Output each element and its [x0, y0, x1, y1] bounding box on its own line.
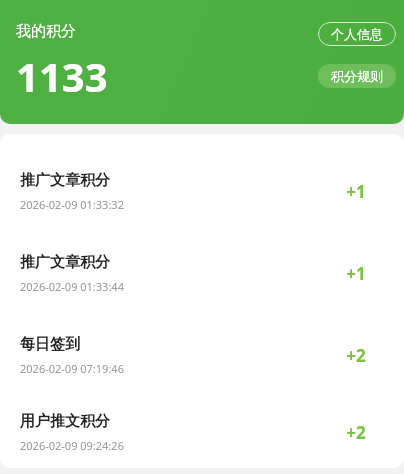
staticText: +1	[346, 180, 366, 203]
staticText: 用户推文积分	[20, 412, 110, 431]
button[interactable]: 个人信息	[318, 22, 396, 46]
staticText: 我的积分	[16, 22, 76, 41]
button[interactable]: 推广文章积分	[0, 150, 404, 232]
staticText: 推广文章积分	[20, 171, 110, 190]
staticText: 积分规则	[331, 68, 383, 84]
staticText: 每日签到	[20, 335, 80, 354]
staticText: 2026-02-09 07:19:46	[20, 361, 124, 376]
button[interactable]: 推广文章积分	[0, 232, 404, 314]
button[interactable]: 积分规则	[318, 64, 396, 88]
staticText: 2026-02-09 01:33:32	[20, 197, 124, 212]
button[interactable]: 每日签到	[0, 314, 404, 396]
staticText: 2026-02-09 09:24:26	[20, 438, 124, 453]
staticText: +2	[346, 421, 366, 444]
staticText: +2	[346, 344, 366, 367]
staticText: 个人信息	[331, 26, 383, 42]
button[interactable]: 用户推文积分	[0, 396, 404, 468]
staticText: 2026-02-09 01:33:44	[20, 279, 124, 294]
staticText: 推广文章积分	[20, 253, 110, 272]
staticText: +1	[346, 262, 366, 285]
staticText: 1133	[16, 49, 108, 103]
